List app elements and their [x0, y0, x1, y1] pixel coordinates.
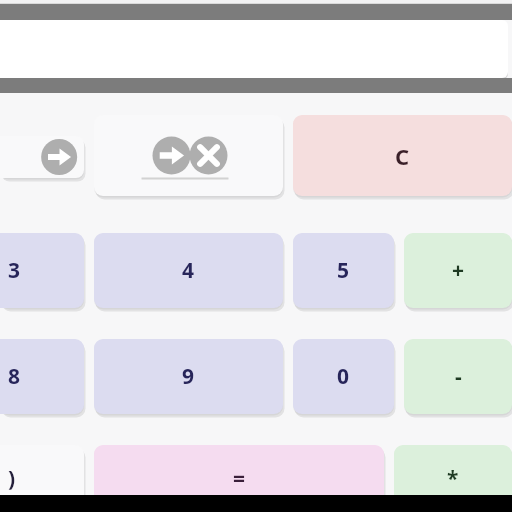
staticText: + — [452, 256, 465, 285]
button[interactable]: = — [94, 445, 384, 512]
staticText: 3 — [8, 256, 21, 285]
button[interactable]: ) — [0, 445, 84, 512]
staticText: 0 — [337, 362, 350, 391]
staticText: = — [233, 464, 246, 493]
button[interactable]: 8 — [0, 339, 84, 414]
button[interactable]: 5 — [293, 233, 394, 308]
staticText: * — [447, 464, 459, 493]
button[interactable]: 0 — [293, 339, 394, 414]
button[interactable]: C — [293, 115, 512, 196]
button[interactable]: 9 — [94, 339, 283, 414]
button[interactable]: 3 — [0, 233, 84, 308]
staticText: - — [455, 362, 462, 391]
staticText: ) — [8, 464, 16, 493]
staticText: 5 — [337, 256, 350, 285]
staticText: 9 — [182, 362, 195, 391]
button[interactable]: 4 — [94, 233, 283, 308]
staticText: C — [395, 141, 410, 171]
staticText: 8 — [8, 362, 21, 391]
button[interactable]: - — [404, 339, 512, 414]
button[interactable]: Cursor right — [0, 136, 84, 178]
button[interactable]: Cursor right and delete — [94, 115, 283, 196]
button[interactable]: + — [404, 233, 512, 308]
staticText: 4 — [182, 256, 195, 285]
button[interactable]: * — [394, 445, 512, 512]
